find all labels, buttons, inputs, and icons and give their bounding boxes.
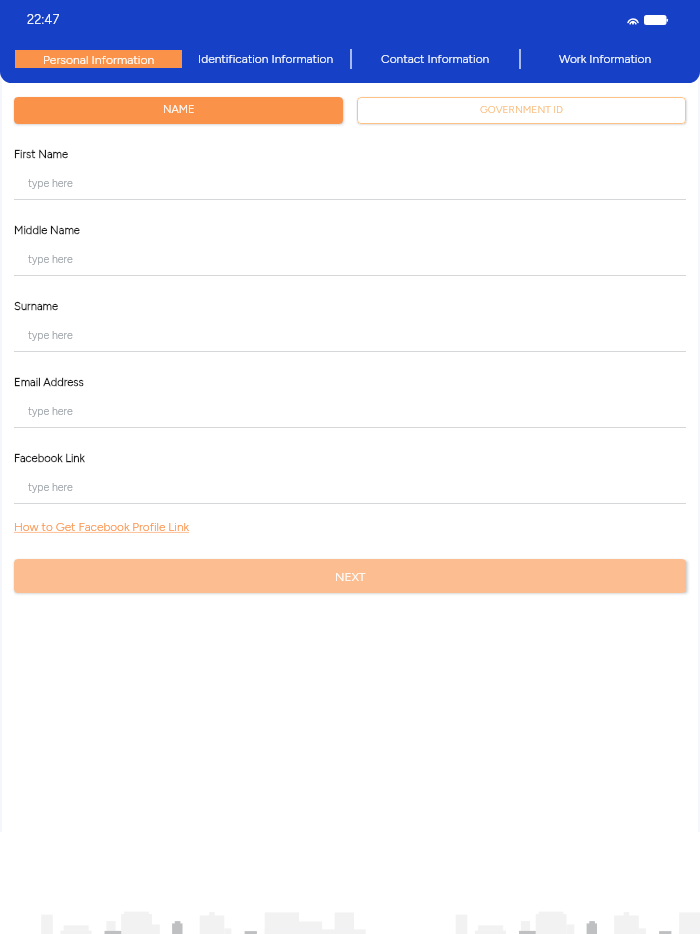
button[interactable]: GOVERNMENT ID [357,97,686,124]
staticText: NAME [163,103,195,116]
staticText: Email Address [14,375,84,388]
staticText: Identification Information [198,52,334,66]
staticText: NEXT [335,569,366,584]
button[interactable]: NAME [14,97,343,124]
staticText: GOVERNMENT ID [480,103,563,115]
staticText: Facebook Link [14,451,85,464]
staticText: Middle Name [14,223,80,236]
button[interactable]: How to Get Facebook Profile Link [14,520,189,534]
button[interactable]: Personal Information [15,50,182,68]
button[interactable]: type here [28,329,73,342]
button[interactable]: type here [28,177,73,190]
button[interactable]: Identification Information [182,52,350,66]
staticText: First Name [14,147,68,160]
button[interactable]: type here [28,481,73,494]
other: Wi-Fi [627,15,639,25]
staticText: Surname [14,299,59,312]
staticText: Personal Information [43,52,155,67]
staticText: Contact Information [381,52,490,66]
button[interactable]: type here [28,405,73,418]
button[interactable]: Work Information [521,52,689,66]
staticText: 22:47 [27,12,60,28]
button[interactable]: NEXT [14,559,686,593]
button[interactable]: type here [28,253,73,266]
staticText: Work Information [559,52,652,66]
other: Battery [644,15,668,25]
button[interactable]: Contact Information [352,52,519,66]
